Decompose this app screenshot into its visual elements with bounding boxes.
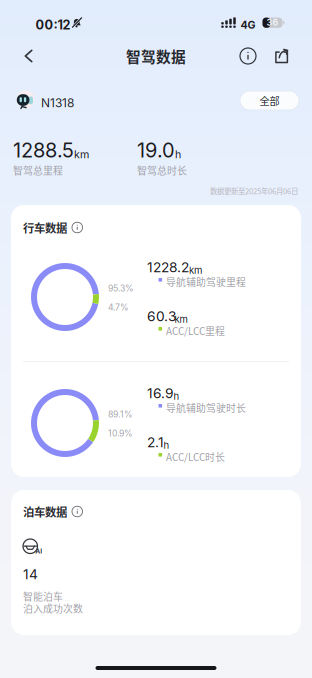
staticText: 智驾总里程 <box>13 163 63 177</box>
staticText: h <box>173 390 179 402</box>
staticText: 泊入成功次数 <box>23 601 83 615</box>
staticText: 泊车数据 <box>23 503 67 520</box>
button[interactable]: Back <box>11 41 47 71</box>
staticText: 10.9% <box>108 428 133 438</box>
staticText: km <box>174 313 187 325</box>
staticText: 16.9 <box>147 385 174 402</box>
staticText: 行车数据 <box>23 219 67 236</box>
staticText: N1318 <box>41 95 74 110</box>
staticText: 60.3 <box>147 308 176 325</box>
staticText: 1288.5 <box>13 138 74 162</box>
staticText: AI <box>35 547 42 555</box>
staticText: km <box>74 148 89 161</box>
staticText: 智驾总时长 <box>137 163 187 177</box>
staticText: 14 <box>23 566 38 583</box>
staticText: 19.0 <box>137 138 175 162</box>
staticText: 95.3% <box>108 283 134 293</box>
staticText: h <box>163 439 169 451</box>
staticText: 1228.2 <box>147 259 189 276</box>
staticText: 00:12 <box>35 17 70 32</box>
button[interactable]: Information <box>72 222 82 233</box>
staticText: 导航辅助驾驶里程 <box>166 274 246 289</box>
button[interactable]: Share <box>267 41 297 71</box>
button[interactable]: 全部 <box>240 91 299 110</box>
staticText: h <box>175 148 181 161</box>
button[interactable]: Information <box>233 41 263 71</box>
button[interactable]: Information <box>72 506 82 517</box>
staticText: 智驾数据 <box>126 45 186 67</box>
staticText: 89.1% <box>108 409 133 419</box>
staticText: 4.7% <box>108 302 129 312</box>
staticText: ACC/LCC里程 <box>166 323 225 338</box>
staticText: 2.1 <box>147 434 164 451</box>
staticText: 全部 <box>259 93 279 108</box>
staticText: ACC/LCC时长 <box>166 449 225 464</box>
staticText: 4G <box>240 18 255 31</box>
staticText: 数据更新至2025年06月06日 <box>210 186 298 196</box>
staticText: 导航辅助驾驶时长 <box>166 400 246 415</box>
staticText: km <box>189 264 202 276</box>
staticText: 36 <box>266 17 278 28</box>
staticText: 智能泊车 <box>23 589 63 603</box>
